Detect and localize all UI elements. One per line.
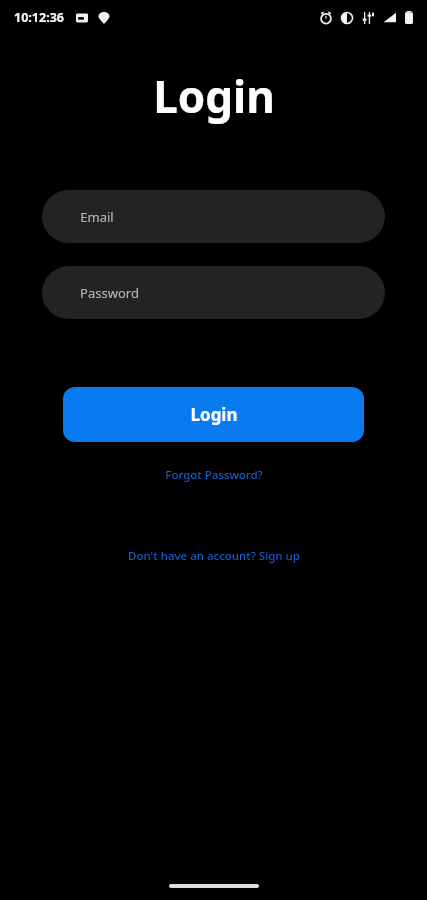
staticText: Forgot Password? bbox=[165, 467, 263, 483]
button[interactable]: Password bbox=[42, 266, 385, 319]
staticText: Don't have an account? Sign up bbox=[128, 548, 300, 564]
button[interactable]: Don't have an account? Sign up bbox=[122, 545, 306, 567]
staticText: Password bbox=[80, 284, 139, 302]
staticText: Email bbox=[80, 208, 114, 226]
button[interactable]: Email bbox=[42, 190, 385, 243]
button[interactable]: Forgot Password? bbox=[159, 464, 269, 486]
button[interactable]: Login bbox=[63, 387, 364, 442]
staticText: 10:12:36 bbox=[14, 9, 64, 26]
staticText: Login bbox=[190, 403, 238, 426]
staticText: Login bbox=[153, 66, 275, 126]
